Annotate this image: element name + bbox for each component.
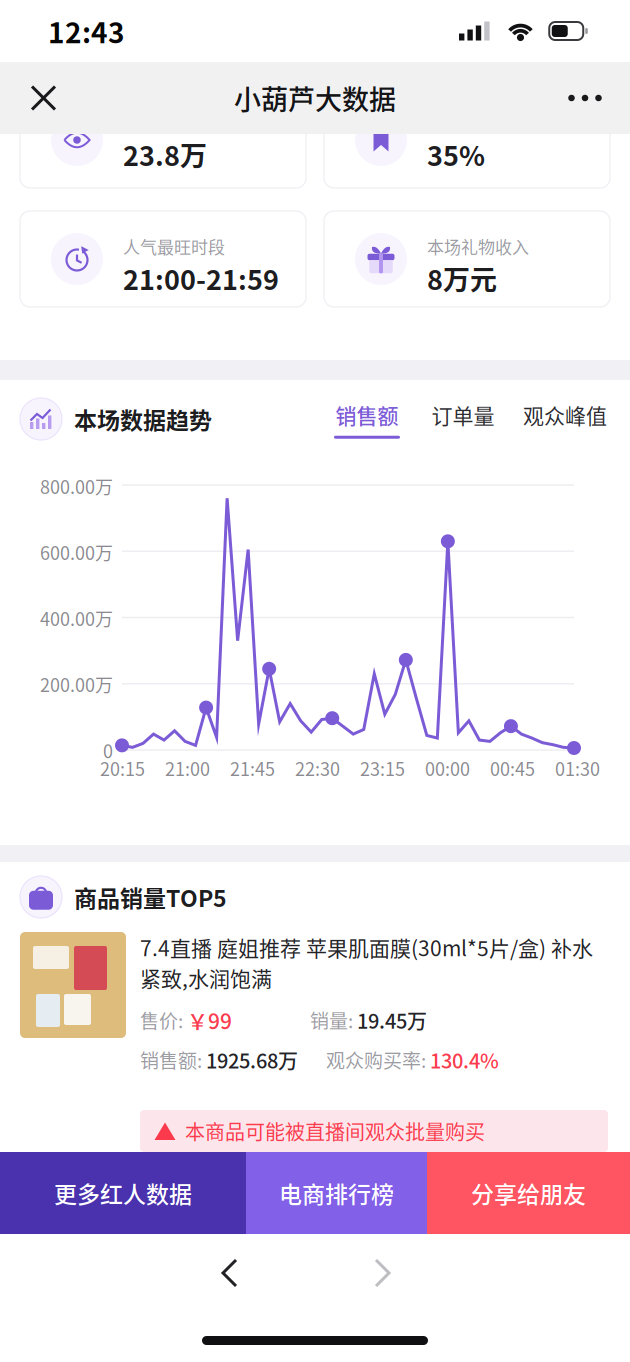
staticText: 130.4%	[430, 1045, 499, 1074]
staticText: 更多红人数据	[54, 1176, 192, 1210]
staticText: 小葫芦大数据	[234, 78, 396, 118]
staticText: ￥99	[187, 1005, 232, 1035]
button[interactable]: 7.4直播 庭姐推荐 苹果肌面膜(30ml*5片/盒) 补水紧致,水润饱满	[0, 932, 630, 1110]
staticText: 400.00万	[40, 605, 113, 631]
staticText: 本商品可能被直播间观众批量购买	[185, 1116, 485, 1145]
staticText: 分享给朋友	[471, 1176, 586, 1210]
staticText: 销售额	[335, 399, 398, 430]
button[interactable]: Forward	[361, 1246, 404, 1300]
staticText: 800.00万	[40, 473, 113, 499]
staticText: 21:45	[230, 755, 275, 781]
staticText: 销售额:	[140, 1046, 206, 1073]
staticText: 23:15	[360, 755, 405, 781]
staticText: 售价:	[140, 1006, 187, 1034]
staticText: 00:45	[490, 755, 535, 781]
staticText: 19.45万	[357, 1005, 427, 1034]
button[interactable]: 分享给朋友	[427, 1152, 630, 1234]
button[interactable]: Back	[208, 1246, 251, 1300]
staticText: 电商排行榜	[279, 1176, 394, 1210]
staticText: 200.00万	[40, 671, 113, 697]
staticText: 1925.68万	[206, 1045, 298, 1074]
staticText: 12:43	[48, 11, 125, 51]
button[interactable]: 更多红人数据	[0, 1152, 246, 1234]
staticText: 订单量	[431, 399, 494, 430]
button[interactable]: 电商排行榜	[246, 1152, 427, 1234]
staticText: 观众购买率:	[326, 1046, 430, 1073]
staticText: 01:30	[555, 755, 600, 781]
staticText: 本场礼物收入	[427, 234, 529, 259]
button[interactable]: 销售额	[334, 398, 400, 440]
staticText: 23.8万	[123, 135, 207, 174]
staticText: 22:30	[295, 755, 340, 781]
button[interactable]: More	[554, 64, 616, 131]
staticText: 21:00-21:59	[123, 259, 279, 298]
button[interactable]: 订单量	[430, 398, 496, 440]
staticText: 35%	[427, 135, 485, 174]
button[interactable]: Close	[14, 64, 73, 131]
button[interactable]: 观众峰值	[522, 398, 608, 440]
staticText: 0	[103, 737, 113, 763]
staticText: 人气最旺时段	[123, 234, 225, 259]
staticText: 00:00	[425, 755, 470, 781]
staticText: 8万元	[427, 259, 497, 298]
staticText: 本场数据趋势	[74, 402, 212, 436]
staticText: 21:00	[165, 755, 210, 781]
staticText: 600.00万	[40, 539, 113, 565]
staticText: 20:15	[100, 755, 145, 781]
staticText: 7.4直播 庭姐推荐 苹果肌面膜(30ml*5片/盒) 补水紧致,水润饱满	[140, 932, 593, 993]
staticText: 观众峰值	[523, 399, 607, 430]
staticText: 销量:	[310, 1006, 357, 1034]
staticText: 商品销量TOP5	[74, 880, 227, 914]
